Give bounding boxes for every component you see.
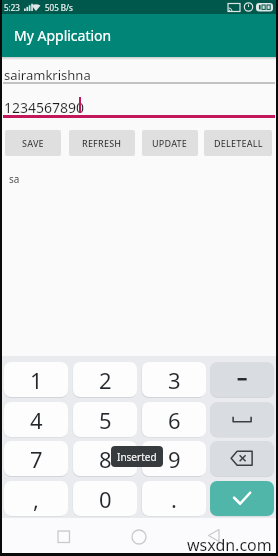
button[interactable]: .	[142, 481, 206, 516]
staticText: 4	[30, 405, 43, 435]
button[interactable]: 8	[73, 441, 137, 476]
button[interactable]	[210, 481, 274, 516]
staticText: 505 B/s	[45, 2, 73, 13]
staticText: sa	[9, 172, 20, 186]
button[interactable]: 3	[142, 362, 206, 397]
button[interactable]: DELETEALL	[204, 130, 272, 156]
staticText: 3	[168, 365, 181, 395]
button[interactable]	[210, 362, 274, 397]
staticText: wsxdn.com	[187, 534, 272, 556]
staticText: 6	[168, 405, 181, 435]
button[interactable]: REFRESH	[69, 130, 135, 156]
staticText: 1234567890	[4, 98, 85, 117]
button[interactable]: 4	[4, 402, 68, 437]
button[interactable]: UPDATE	[142, 130, 198, 156]
button[interactable]: 0	[73, 481, 137, 516]
button[interactable]: SAVE	[5, 130, 61, 156]
staticText: 1	[30, 365, 43, 395]
staticText: 8	[99, 444, 112, 474]
staticText: My Application	[14, 26, 112, 45]
button[interactable]: 1	[4, 362, 68, 397]
button[interactable]: 2	[73, 362, 137, 397]
button[interactable]: 7	[4, 441, 68, 476]
staticText: 9	[168, 444, 181, 474]
staticText: SAVE	[22, 137, 44, 149]
button[interactable]: 6	[142, 402, 206, 437]
button[interactable]: sairamkrishna	[4, 66, 274, 86]
staticText: Inserted	[117, 450, 157, 464]
staticText: DELETEALL	[214, 137, 263, 149]
button[interactable]: ,	[4, 481, 68, 516]
button[interactable]	[210, 441, 274, 476]
button[interactable]: 5	[73, 402, 137, 437]
button[interactable]: 1234567890	[4, 98, 274, 118]
staticText: ,	[33, 484, 39, 514]
staticText: REFRESH	[82, 137, 122, 149]
staticText: 2	[99, 365, 112, 395]
staticText: 7	[30, 444, 43, 474]
button[interactable]: 9	[142, 441, 206, 476]
staticText: 5:23	[4, 2, 20, 13]
staticText: 0	[99, 484, 112, 514]
staticText: sairamkrishna	[4, 66, 91, 84]
staticText: .	[171, 484, 177, 514]
button[interactable]	[210, 402, 274, 437]
staticText: 5	[99, 405, 112, 435]
staticText: UPDATE	[152, 137, 188, 149]
